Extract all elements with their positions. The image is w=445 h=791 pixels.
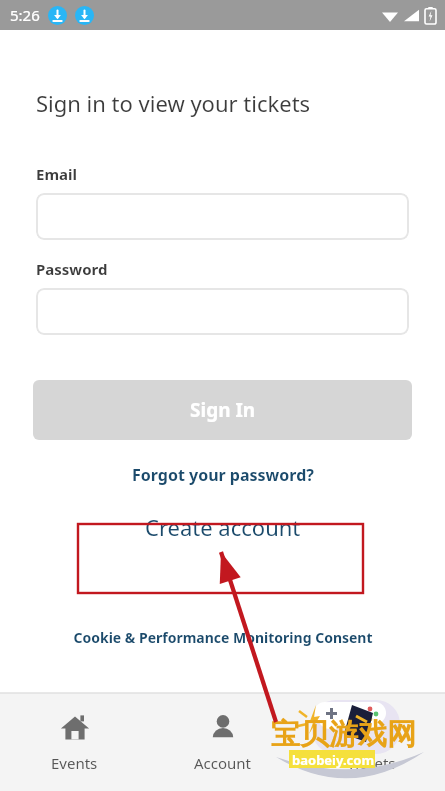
button[interactable]: Cookie & Performance Monitoring Consent: [0, 624, 445, 650]
staticText: Tickets: [347, 753, 396, 773]
staticText: Sign In: [190, 397, 256, 423]
button[interactable]: Account: [149, 693, 297, 773]
staticText: Password: [36, 259, 108, 279]
other: Events: [60, 713, 90, 743]
staticText: Events: [51, 753, 98, 773]
staticText: Cookie & Performance Monitoring Consent: [73, 628, 373, 647]
staticText: Forgot your password?: [132, 464, 314, 486]
button[interactable]: Tickets: [297, 693, 445, 773]
staticText: Create account: [145, 512, 301, 542]
staticText: Email: [36, 164, 77, 184]
staticText: Account: [194, 753, 252, 773]
staticText: 5:26: [10, 5, 40, 25]
other: Account: [208, 713, 238, 743]
button[interactable]: [36, 193, 409, 240]
button[interactable]: Sign In: [33, 380, 412, 440]
button[interactable]: [36, 288, 409, 335]
other: Tickets: [356, 713, 386, 743]
button[interactable]: Forgot your password?: [0, 462, 445, 488]
button[interactable]: Events: [0, 693, 149, 773]
staticText: baobeiy.com: [292, 751, 375, 769]
button[interactable]: Create account: [0, 508, 445, 546]
staticText: 宝贝游戏网: [271, 716, 416, 753]
staticText: Sign in to view your tickets: [36, 88, 311, 118]
